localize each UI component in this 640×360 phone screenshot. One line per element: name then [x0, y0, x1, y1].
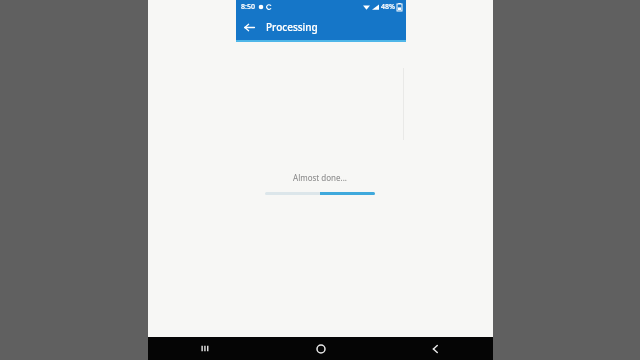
staticText: Processing: [266, 20, 318, 34]
staticText: Almost done...: [293, 172, 347, 183]
button[interactable]: Back: [236, 14, 262, 40]
button[interactable]: Recent apps: [148, 337, 263, 360]
button[interactable]: Back: [378, 337, 493, 360]
button[interactable]: Home: [263, 337, 378, 360]
staticText: 48%: [381, 2, 395, 12]
staticText: 8:50: [241, 2, 255, 12]
